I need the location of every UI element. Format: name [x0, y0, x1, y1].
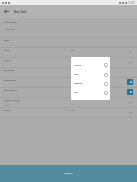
- staticText: Select: [70, 109, 76, 111]
- button[interactable]: Critical: [71, 60, 110, 70]
- staticText: Low: [74, 91, 79, 94]
- button[interactable]: + Add Item: [4, 28, 15, 31]
- staticText: Name: [4, 39, 10, 41]
- button[interactable]: Status: [0, 47, 137, 57]
- button[interactable]: Open details: [127, 79, 133, 85]
- staticText: Budget Costs: [4, 79, 16, 81]
- staticText: Estimate Number: [4, 99, 20, 101]
- staticText: Description: [4, 69, 15, 71]
- button[interactable]: Open details: [127, 89, 133, 95]
- staticText: + Add Item: [4, 28, 15, 31]
- button[interactable]: Medium: [71, 79, 110, 88]
- button[interactable]: Time(s): [0, 107, 137, 117]
- staticText: Time(s): [4, 109, 11, 111]
- staticText: SUBMIT: [64, 172, 73, 175]
- staticText: 12:30: [128, 1, 135, 5]
- staticText: Medium: [74, 82, 83, 85]
- staticText: Select: [4, 104, 10, 106]
- button[interactable]: Low: [71, 88, 110, 97]
- staticText: Select: [70, 49, 76, 51]
- staticText: Priority: [4, 59, 11, 61]
- staticText: New Task: [14, 10, 27, 14]
- button[interactable]: Estimate Number: [0, 97, 137, 107]
- button[interactable]: High: [71, 70, 110, 79]
- button[interactable]: Budget Hours: [0, 87, 137, 97]
- staticText: Select: [70, 59, 76, 61]
- staticText: Status: [4, 49, 10, 51]
- staticText: Budget Hours: [4, 89, 17, 91]
- button[interactable]: Name: [0, 37, 137, 47]
- staticText: Critical: [74, 64, 82, 67]
- staticText: High: [74, 73, 79, 76]
- staticText: Attachments: [4, 21, 17, 24]
- button[interactable]: Back: [0, 5, 13, 18]
- button[interactable]: SUBMIT: [0, 165, 137, 182]
- button[interactable]: Priority: [0, 57, 137, 67]
- button[interactable]: Description: [0, 67, 137, 77]
- button[interactable]: Budget Costs: [0, 77, 137, 87]
